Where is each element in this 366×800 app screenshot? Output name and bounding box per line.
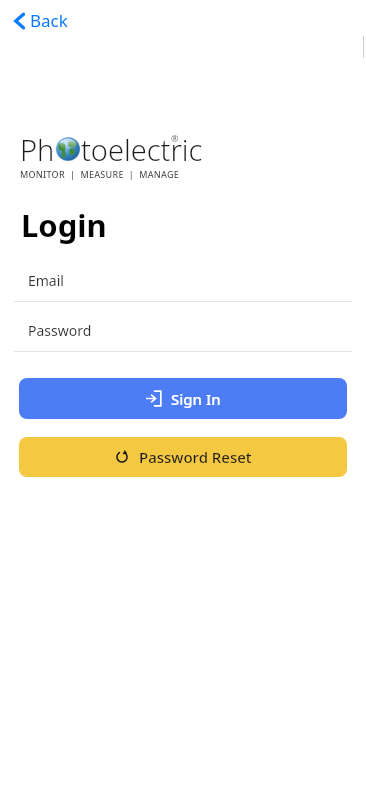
button[interactable]: Sign in <box>19 378 347 419</box>
staticText: Password Reset <box>139 447 252 467</box>
staticText: Back <box>30 9 68 32</box>
other: Sign in <box>145 390 162 407</box>
button[interactable]: Back <box>8 5 74 36</box>
button[interactable]: Email <box>0 271 366 302</box>
staticText: Password <box>28 321 92 340</box>
staticText: ® <box>171 132 179 144</box>
button[interactable]: Password <box>0 321 366 352</box>
staticText: Sign In <box>171 389 221 409</box>
button[interactable]: Reset password <box>19 437 347 477</box>
other: Reset password <box>114 449 130 465</box>
staticText: Email <box>28 271 64 290</box>
staticText: MONITOR | MEASURE | MANAGE <box>20 168 180 180</box>
staticText: Ph <box>20 130 55 168</box>
staticText: Login <box>21 204 107 246</box>
staticText: toelectric <box>81 130 203 168</box>
